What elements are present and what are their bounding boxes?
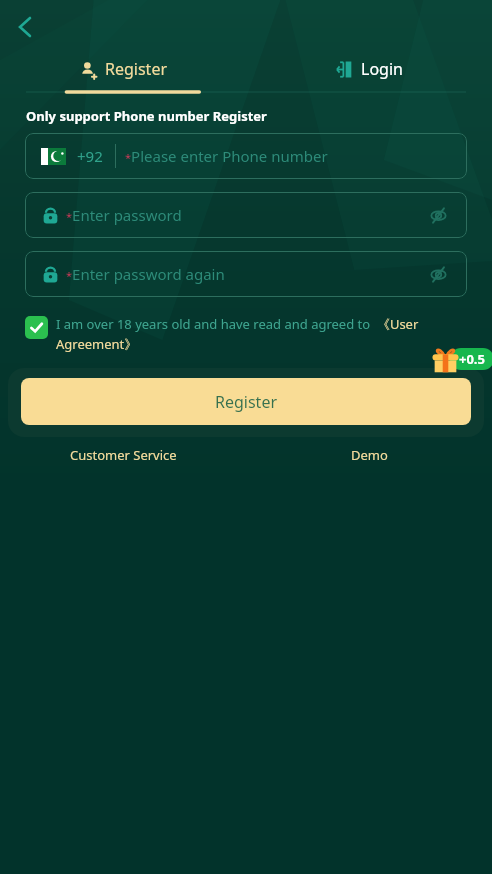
staticText: I am over 18 years old and have read and… [56, 315, 464, 353]
staticText: Customer Service [70, 446, 177, 464]
staticText: *Please enter Phone number [125, 146, 328, 166]
staticText: Register [215, 391, 278, 413]
button[interactable]: Login [246, 48, 492, 90]
staticText: Login [361, 58, 403, 80]
staticText: +92 [77, 146, 103, 166]
button[interactable]: Demo [246, 446, 492, 464]
staticText: Register [105, 58, 168, 80]
staticText: *Enter password again [66, 264, 225, 284]
button[interactable]: Customer Service [0, 446, 246, 464]
button[interactable]: *Enter password [25, 192, 467, 238]
staticText: *Enter password [66, 205, 182, 225]
button[interactable]: *Enter password again [25, 251, 467, 297]
staticText: +0.5 [459, 350, 485, 368]
button[interactable]: I am over 18 years old and have read and… [25, 315, 464, 353]
other: Show password [428, 205, 449, 226]
staticText: Only support Phone number Register [26, 107, 267, 125]
other: Show password [428, 264, 449, 285]
button[interactable]: +92 [25, 133, 467, 179]
button[interactable]: Register [0, 48, 246, 90]
button[interactable]: Back [4, 6, 46, 48]
staticText: Demo [351, 446, 388, 464]
button[interactable]: Register [21, 378, 471, 425]
